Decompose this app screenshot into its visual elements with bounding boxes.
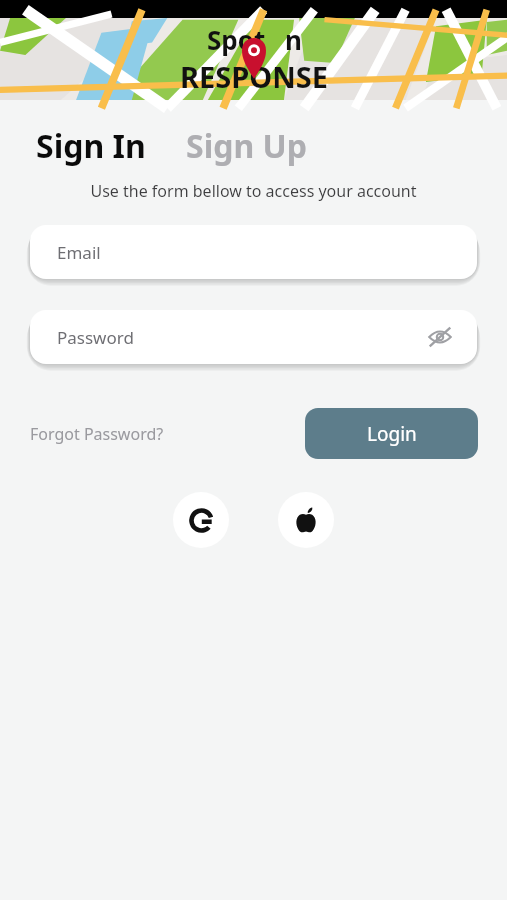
staticText: Spot xyxy=(207,22,266,57)
staticText: Password xyxy=(57,326,134,349)
button[interactable]: Email xyxy=(30,225,477,279)
staticText: Email xyxy=(57,241,101,264)
staticText: Use the form bellow to access your accou… xyxy=(0,180,507,202)
button[interactable]: Sign in with Google xyxy=(173,492,229,548)
button[interactable]: Sign in with Apple xyxy=(278,492,334,548)
button[interactable]: Sign Up xyxy=(180,122,313,170)
button[interactable]: Password xyxy=(30,310,477,364)
staticText: Sign In xyxy=(36,124,146,168)
button[interactable]: Sign In xyxy=(30,122,152,170)
staticText: RESPONSE xyxy=(180,57,328,96)
button[interactable]: Login xyxy=(305,408,478,459)
staticText: Sign Up xyxy=(186,124,307,168)
staticText: Forgot Password? xyxy=(30,423,164,445)
staticText: Login xyxy=(367,421,417,447)
button[interactable]: Forgot Password? xyxy=(30,417,164,451)
button[interactable]: Show password xyxy=(425,322,455,352)
staticText: n xyxy=(285,22,302,57)
